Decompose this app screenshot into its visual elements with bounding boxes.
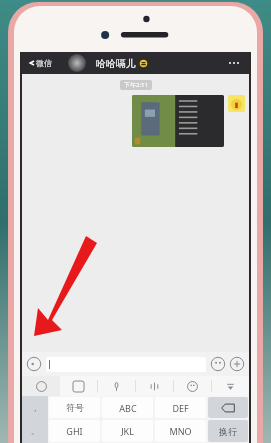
staticText: 。 (31, 426, 39, 436)
staticText: 换行 (219, 426, 237, 437)
button[interactable]: Emoji (210, 356, 226, 372)
button[interactable]: Handwriting (136, 376, 173, 396)
button[interactable]: Text mode (60, 376, 97, 396)
staticText: ABC (119, 402, 137, 414)
staticText: MNO (169, 425, 192, 437)
button[interactable]: GHI (49, 420, 100, 442)
button[interactable]: ABC (102, 397, 153, 418)
staticText: GHI (66, 425, 83, 437)
button[interactable]: ， (22, 396, 48, 419)
button[interactable]: Sender avatar (228, 95, 245, 112)
button[interactable]: Back to WeChat (26, 58, 54, 68)
button[interactable]: Voice input (26, 356, 42, 372)
button[interactable]: Photo message (132, 95, 224, 147)
staticText: DEF (172, 402, 189, 414)
button[interactable]: Hide keyboard (212, 376, 249, 396)
button[interactable]: More functions (229, 356, 245, 372)
button[interactable]: Voice (98, 376, 135, 396)
button[interactable]: MNO (155, 420, 206, 442)
button[interactable]: 符号 (49, 397, 100, 418)
button[interactable] (46, 357, 206, 372)
button[interactable]: Backspace (208, 397, 248, 418)
staticText: JKL (121, 425, 134, 437)
staticText: 微信 (36, 58, 52, 68)
button[interactable]: Emoji panel (174, 376, 211, 396)
button[interactable]: Contact avatar (68, 54, 86, 72)
button[interactable]: JKL (102, 420, 153, 442)
button[interactable]: Keyboard switch (22, 376, 60, 396)
button[interactable]: 换行 (208, 420, 248, 442)
staticText: 哈哈嗝儿 (96, 57, 136, 70)
button[interactable]: More options (223, 56, 245, 70)
staticText: 符号 (66, 402, 84, 413)
button[interactable]: DEF (155, 397, 206, 418)
staticText: ， (31, 403, 39, 413)
staticText: 下午2:11 (124, 81, 148, 89)
